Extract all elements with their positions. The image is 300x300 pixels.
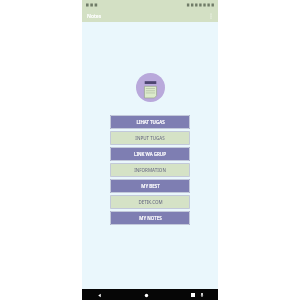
staticText: LIHAT TUGAS <box>136 119 165 125</box>
staticText: MY NOTES <box>139 215 162 221</box>
staticText: INFORMATION <box>134 167 166 173</box>
staticText: INPUT TUGAS <box>135 135 165 141</box>
button[interactable]: DETIK.COM <box>110 195 190 209</box>
staticText: LINK WA GRUP <box>134 151 166 157</box>
button[interactable]: MY NOTES <box>110 211 190 225</box>
button[interactable]: Recent apps <box>188 290 198 300</box>
button[interactable]: Home <box>141 290 151 300</box>
button[interactable]: LINK WA GRUP <box>110 147 190 161</box>
staticText: Notes <box>87 13 102 20</box>
button[interactable]: LIHAT TUGAS <box>110 115 190 129</box>
staticText: DETIK.COM <box>138 199 163 205</box>
button[interactable]: Notes logo <box>136 73 165 102</box>
button[interactable]: INPUT TUGAS <box>110 131 190 145</box>
button[interactable]: More options <box>206 11 216 21</box>
button[interactable]: INFORMATION <box>110 163 190 177</box>
staticText: MY BEST <box>141 183 160 189</box>
button[interactable]: Back <box>94 290 104 300</box>
button[interactable]: Hide keyboard <box>198 291 206 299</box>
button[interactable]: MY BEST <box>110 179 190 193</box>
